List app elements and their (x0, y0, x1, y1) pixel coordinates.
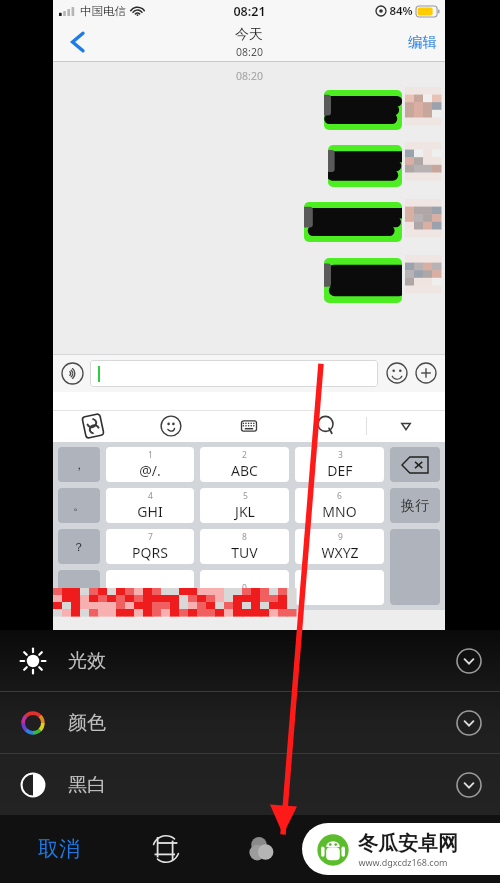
button[interactable]: 0 (200, 570, 289, 605)
button[interactable]: 光效 (0, 630, 500, 691)
button[interactable]: Hide keyboard (367, 410, 445, 442)
button[interactable]: Sogou input (53, 410, 132, 442)
staticText: www.dgxcdz168.com (358, 856, 448, 868)
staticText: 8 (242, 531, 247, 543)
button[interactable]: 9 (295, 529, 384, 564)
button[interactable]: 编辑 (408, 33, 437, 51)
staticText: MNO (322, 502, 357, 521)
staticText: 5 (243, 490, 248, 502)
staticText: ， (73, 457, 85, 472)
button[interactable]: 4 (106, 488, 194, 523)
staticText: PQRS (132, 543, 168, 562)
button[interactable] (304, 202, 402, 242)
staticText: 08:21 (233, 3, 266, 20)
button[interactable]: 颜色 (0, 692, 500, 753)
staticText: 今天 (235, 26, 263, 44)
button[interactable]: More (413, 360, 439, 386)
button[interactable]: Filters (214, 815, 309, 883)
button[interactable]: 3 (295, 447, 384, 482)
staticText: 3 (338, 449, 343, 461)
staticText: 冬瓜安卓网 (358, 831, 458, 856)
button[interactable]: Keyboard layout (210, 410, 288, 442)
staticText: 6 (337, 490, 342, 502)
staticText: 换行 (401, 497, 429, 515)
staticText: 黑白 (68, 773, 106, 797)
button[interactable]: 。 (58, 488, 100, 523)
staticText: 84% (389, 3, 413, 19)
button[interactable] (295, 570, 384, 605)
button[interactable] (324, 90, 402, 130)
button[interactable]: Adjust (336, 829, 378, 869)
staticText: DEF (327, 461, 353, 480)
button[interactable]: 5 (200, 488, 289, 523)
button[interactable]: Voice input (59, 360, 85, 386)
staticText: 颜色 (68, 711, 106, 735)
staticText: 08:20 (236, 45, 263, 59)
staticText: 9 (338, 531, 343, 543)
button[interactable]: 黑白 (0, 754, 500, 815)
button[interactable] (58, 570, 100, 605)
staticText: ？ (73, 539, 85, 554)
button[interactable]: 取消 (0, 815, 118, 883)
staticText: WXYZ (321, 543, 359, 562)
button[interactable]: ？ (58, 529, 100, 564)
button[interactable]: 7 (106, 529, 194, 564)
staticText: ABC (231, 461, 258, 480)
button[interactable] (106, 570, 194, 605)
staticText: 2 (242, 449, 247, 461)
button[interactable] (328, 145, 402, 187)
staticText: TUV (231, 543, 258, 562)
button[interactable]: 1 (106, 447, 194, 482)
button[interactable]: Crop and rotate (118, 815, 214, 883)
staticText: 。 (73, 498, 85, 513)
staticText: @/. (139, 461, 161, 480)
button[interactable]: 8 (200, 529, 289, 564)
button[interactable]: 6 (295, 488, 384, 523)
button[interactable]: Search (288, 410, 366, 442)
button[interactable]: 2 (200, 447, 289, 482)
button[interactable] (90, 360, 378, 387)
staticText: 4 (148, 490, 153, 502)
staticText: 0 (242, 582, 247, 594)
staticText: 08:20 (236, 69, 263, 83)
staticText: JKL (235, 502, 255, 521)
button[interactable]: 换行 (390, 488, 440, 523)
button[interactable]: Emoji (384, 360, 410, 386)
button[interactable]: ， (58, 447, 100, 482)
staticText: GHI (137, 502, 163, 521)
button[interactable]: Delete (390, 447, 440, 482)
staticText: 取消 (38, 836, 80, 862)
staticText: 7 (148, 531, 153, 543)
button[interactable]: Emoji (132, 410, 210, 442)
button[interactable] (324, 258, 402, 303)
staticText: 中国电信 (80, 4, 126, 18)
staticText: 光效 (68, 649, 106, 673)
button[interactable]: Back (57, 22, 97, 62)
staticText: 编辑 (408, 33, 437, 51)
staticText: 1 (148, 449, 153, 461)
